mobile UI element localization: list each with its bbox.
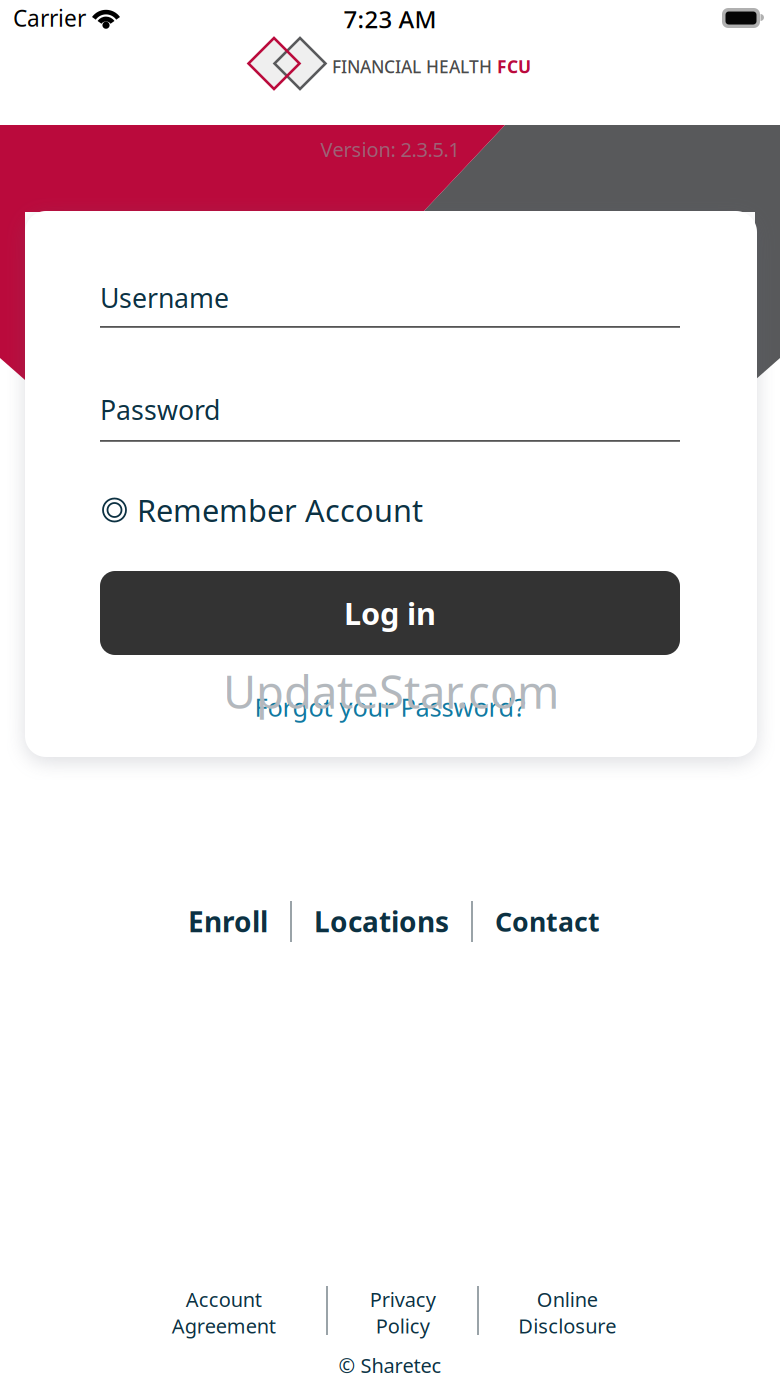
staticText: Account Agreement xyxy=(171,1286,275,1339)
button[interactable]: Log in xyxy=(100,571,680,655)
staticText: Privacy Policy xyxy=(369,1286,435,1339)
button[interactable]: Forgot your Password? xyxy=(100,690,680,724)
staticText: © Sharetec xyxy=(338,1352,441,1379)
staticText: Password xyxy=(100,392,220,427)
staticText: Contact xyxy=(495,904,600,939)
staticText: Remember Account xyxy=(137,490,423,530)
staticText: Carrier xyxy=(13,3,86,33)
button[interactable]: Remember Account xyxy=(102,493,423,527)
staticText: 7:23 AM xyxy=(343,3,436,35)
staticText: Forgot your Password? xyxy=(254,690,525,724)
staticText: Version: 2.3.5.1 xyxy=(320,136,459,163)
staticText: UpdateStar.com xyxy=(223,661,559,721)
button[interactable]: Contact xyxy=(473,904,622,939)
staticText: Locations xyxy=(314,903,449,940)
button[interactable]: Account Agreement xyxy=(121,1286,326,1339)
button[interactable]: Enroll xyxy=(166,903,290,940)
button[interactable]: Privacy Policy xyxy=(328,1286,477,1339)
staticText: FINANCIAL HEALTH xyxy=(332,55,497,78)
staticText: Online Disclosure xyxy=(518,1286,616,1339)
staticText: FCU xyxy=(497,55,531,78)
staticText: Username xyxy=(100,280,229,315)
button[interactable]: Online Disclosure xyxy=(479,1286,655,1339)
button[interactable]: Locations xyxy=(292,903,471,940)
staticText: Log in xyxy=(344,593,436,633)
staticText: Enroll xyxy=(188,903,268,940)
